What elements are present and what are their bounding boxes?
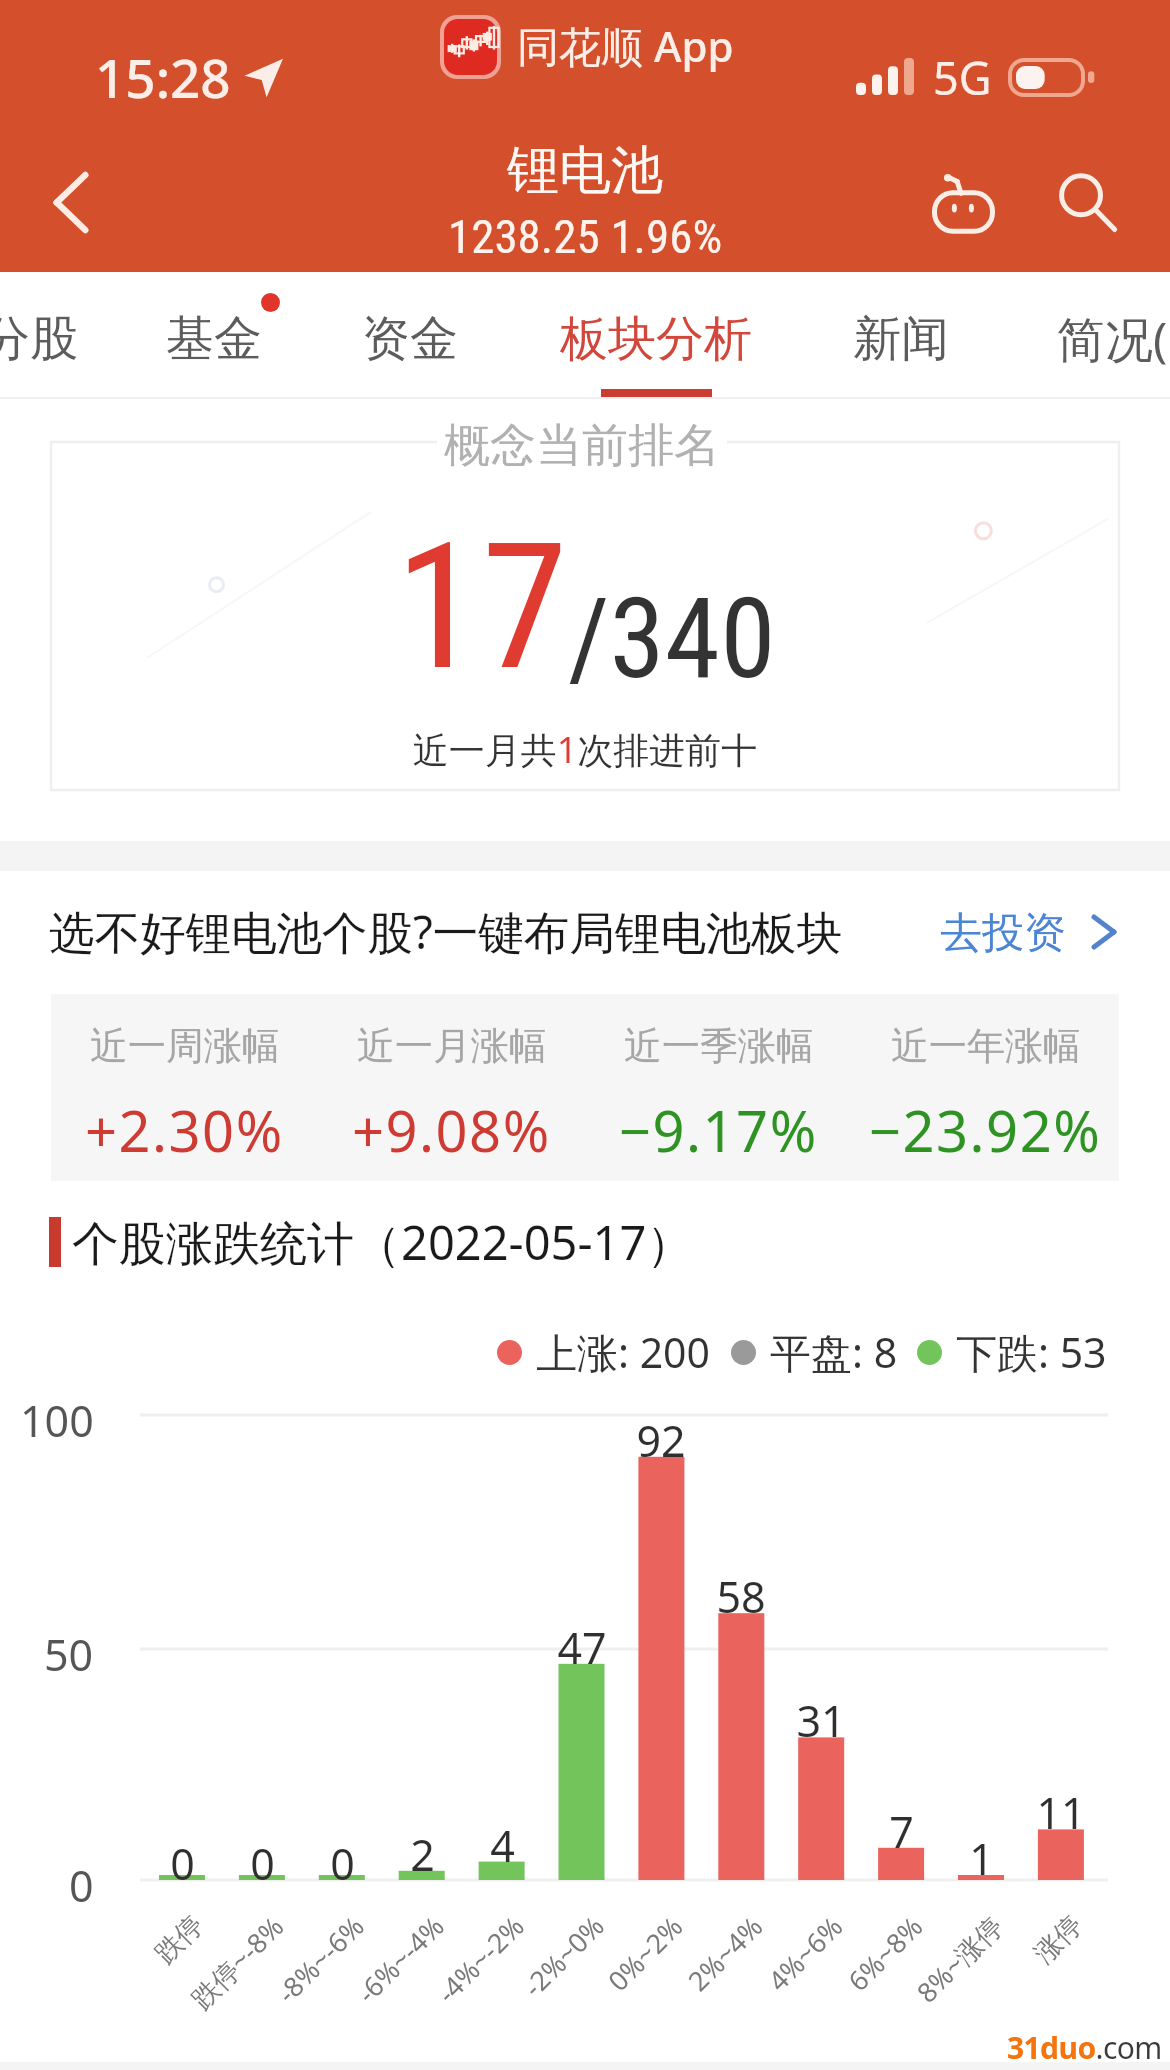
staticText: −23.92% xyxy=(869,1092,1102,1168)
staticText: 同花顺 App xyxy=(517,17,734,74)
staticText: 0 xyxy=(330,1834,355,1890)
staticText: 资金 xyxy=(362,309,458,369)
staticText: 近一季涨幅 xyxy=(624,1022,814,1070)
staticText: +2.30% xyxy=(85,1092,284,1168)
staticText: 7 xyxy=(889,1802,914,1858)
staticText: 4 xyxy=(490,1816,515,1872)
staticText: 新闻 xyxy=(853,309,949,369)
staticText: 锂电池 xyxy=(507,138,663,204)
staticText: 涨停 xyxy=(1027,1908,1089,1970)
staticText: 跌停 xyxy=(148,1908,210,1970)
staticText: /340 xyxy=(568,573,776,704)
staticText: 11 xyxy=(1036,1783,1086,1839)
button[interactable]: AI assistant xyxy=(908,147,1018,257)
staticText: 2 xyxy=(410,1825,435,1881)
staticText: 近一月共1次排进前十 xyxy=(0,725,1170,774)
button[interactable]: 选不好锂电池个股?一键布局锂电池板块 xyxy=(0,871,1170,993)
button[interactable]: Back xyxy=(18,149,124,255)
staticText: 5G xyxy=(933,47,992,108)
staticText: 近一月涨幅 xyxy=(357,1022,547,1070)
staticText: -6%~-4% xyxy=(348,1907,452,2011)
staticText: 6%~8% xyxy=(839,1907,931,1999)
staticText: 上涨: 200 xyxy=(536,1324,711,1380)
staticText: +9.08% xyxy=(352,1092,551,1168)
button[interactable]: 板块分析 xyxy=(536,276,776,402)
staticText: 选不好锂电池个股?一键布局锂电池板块 xyxy=(49,900,843,962)
button[interactable]: 基金 xyxy=(94,276,334,402)
staticText: 15:28 xyxy=(95,41,231,113)
staticText: 92 xyxy=(636,1411,686,1467)
staticText: 跌停~-8% xyxy=(183,1907,292,2016)
staticText: 基金 xyxy=(166,309,262,369)
staticText: 0 xyxy=(69,1856,94,1912)
staticText: 分股 xyxy=(0,309,78,369)
button[interactable]: 资金 xyxy=(290,276,530,402)
button[interactable]: 新闻 xyxy=(781,276,1021,402)
staticText: 2%~4% xyxy=(679,1907,771,1999)
staticText: 31 xyxy=(796,1691,846,1747)
staticText: 1 xyxy=(969,1829,994,1885)
staticText: 0 xyxy=(170,1834,195,1890)
staticText: -2%~0% xyxy=(515,1907,612,2004)
staticText: 0%~2% xyxy=(599,1907,691,1999)
staticText: 50 xyxy=(44,1625,94,1681)
button[interactable]: Search xyxy=(1031,147,1145,261)
staticText: 近一年涨幅 xyxy=(891,1022,1081,1070)
staticText: 下跌: 53 xyxy=(956,1324,1107,1380)
staticText: 板块分析 xyxy=(560,309,752,369)
staticText: 31duo.com xyxy=(1007,2027,1162,2068)
staticText: 个股涨跌统计（2022-05-17） xyxy=(72,1210,694,1272)
button[interactable]: 简况( xyxy=(992,276,1170,402)
staticText: 47 xyxy=(557,1618,607,1674)
staticText: -8%~-6% xyxy=(268,1907,372,2011)
staticText: 8%~涨停 xyxy=(908,1907,1011,2010)
staticText: 去投资 xyxy=(940,907,1066,960)
staticText: 4%~6% xyxy=(759,1907,851,1999)
staticText: -4%~-2% xyxy=(428,1907,532,2011)
staticText: 1238.25 1.96% xyxy=(448,209,723,264)
staticText: 17 xyxy=(395,505,568,710)
staticText: 简况( xyxy=(1057,306,1168,372)
staticText: 58 xyxy=(716,1567,766,1623)
button[interactable]: 分股 xyxy=(0,276,150,402)
staticText: 0 xyxy=(250,1834,275,1890)
staticText: 概念当前排名 xyxy=(444,417,720,469)
staticText: −9.17% xyxy=(619,1092,818,1168)
staticText: 平盘: 8 xyxy=(770,1324,898,1380)
staticText: 近一周涨幅 xyxy=(90,1022,280,1070)
staticText: 100 xyxy=(20,1391,94,1447)
